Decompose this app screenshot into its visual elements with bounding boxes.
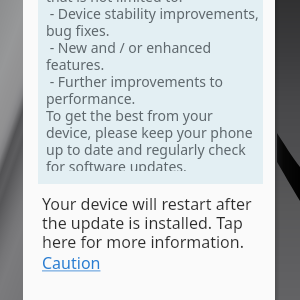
staticText: that is not limited to: - Device stabili… (46, 0, 259, 171)
button[interactable]: Caution (42, 252, 101, 274)
staticText: Caution (42, 252, 101, 274)
staticText: Your device will restart after the updat… (42, 193, 252, 253)
